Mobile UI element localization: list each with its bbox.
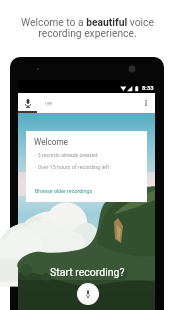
staticText: Welcome to a beautiful voice recording e… [21,16,154,40]
button[interactable]: More options [138,93,154,113]
button[interactable]: Welcome [26,131,147,202]
button[interactable]: Start recording [77,283,99,305]
staticText: · 3 records already created. [35,152,99,158]
staticText: · Over 15 hours of recording left [35,164,110,170]
staticText: Browse older recordings [35,188,93,194]
button[interactable]: Recordings tab [39,93,58,113]
staticText: Welcome [34,137,68,147]
button[interactable]: Record tab [18,93,37,113]
staticText: 8:33 [142,85,154,92]
staticText: Start recording? [50,266,125,278]
